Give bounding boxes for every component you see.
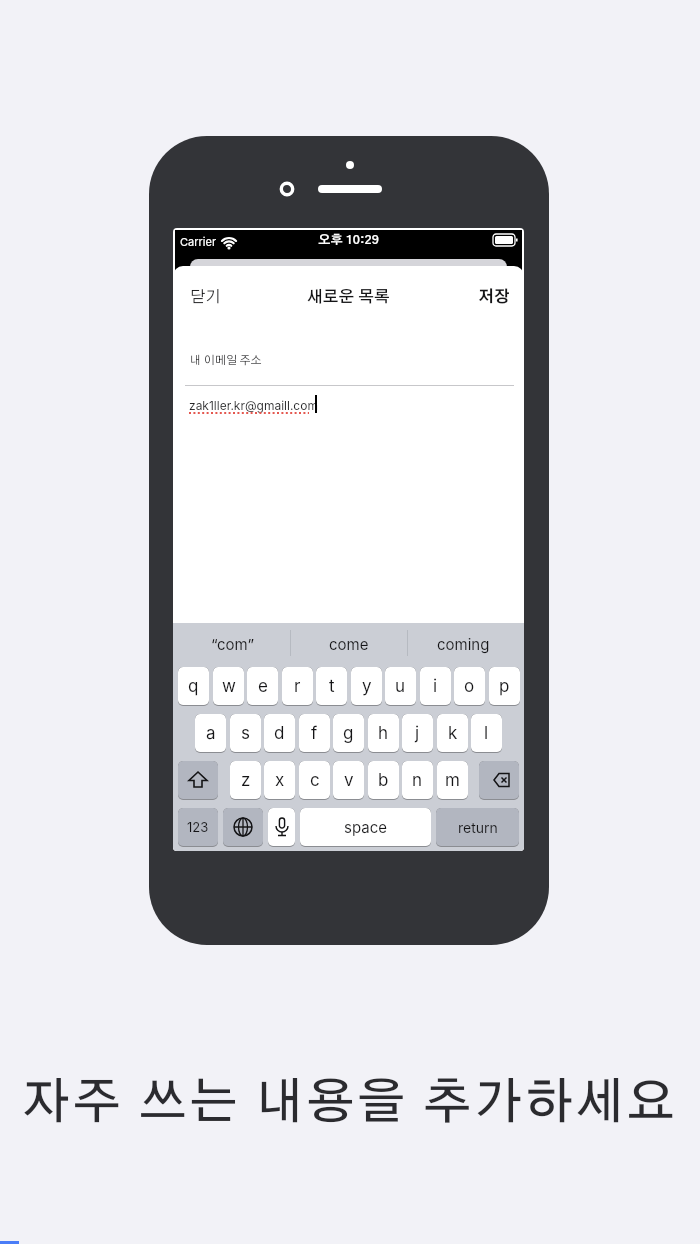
- staticText: b: [378, 770, 389, 791]
- staticText: 오후 10:29: [318, 234, 379, 247]
- staticText: Carrier: [180, 235, 217, 248]
- staticText: q: [188, 676, 199, 697]
- staticText: c: [310, 770, 320, 791]
- button[interactable]: v: [333, 761, 364, 800]
- staticText: 자주 쓰는 내용을 추가하세요: [22, 1079, 678, 1128]
- button[interactable]: [223, 808, 263, 847]
- button[interactable]: [479, 761, 519, 800]
- staticText: “com”: [211, 635, 255, 653]
- staticText: h: [378, 723, 389, 744]
- staticText: 새로운 목록: [307, 289, 390, 305]
- staticText: y: [362, 676, 372, 697]
- button[interactable]: j: [402, 714, 433, 753]
- staticText: 저장: [478, 289, 510, 305]
- staticText: g: [343, 723, 354, 744]
- staticText: x: [275, 770, 285, 791]
- button[interactable]: space: [300, 808, 431, 847]
- button[interactable]: i: [420, 667, 451, 706]
- staticText: k: [448, 723, 458, 744]
- staticText: n: [412, 770, 423, 791]
- button[interactable]: p: [489, 667, 520, 706]
- button[interactable]: 저장: [478, 289, 510, 305]
- staticText: a: [206, 723, 216, 744]
- button[interactable]: m: [437, 761, 468, 800]
- button[interactable]: d: [264, 714, 295, 753]
- button[interactable]: n: [402, 761, 433, 800]
- button[interactable]: r: [282, 667, 313, 706]
- staticText: m: [445, 770, 460, 791]
- staticText: space: [344, 818, 387, 836]
- staticText: l: [484, 723, 489, 744]
- button[interactable]: b: [368, 761, 399, 800]
- button[interactable]: g: [333, 714, 364, 753]
- button[interactable]: l: [471, 714, 502, 753]
- staticText: f: [311, 723, 318, 744]
- staticText: r: [294, 676, 301, 697]
- button[interactable]: 123: [178, 808, 218, 847]
- button[interactable]: 닫기: [190, 289, 221, 305]
- staticText: v: [344, 770, 354, 791]
- button[interactable]: t: [316, 667, 347, 706]
- staticText: d: [274, 723, 285, 744]
- button[interactable]: h: [368, 714, 399, 753]
- staticText: zak1ller.kr@gmaill.com: [189, 398, 318, 413]
- staticText: 닫기: [190, 289, 221, 305]
- button[interactable]: e: [247, 667, 278, 706]
- button[interactable]: s: [230, 714, 261, 753]
- button[interactable]: w: [213, 667, 244, 706]
- button[interactable]: z: [230, 761, 261, 800]
- button[interactable]: x: [264, 761, 295, 800]
- button[interactable]: return: [436, 808, 519, 847]
- button[interactable]: c: [299, 761, 330, 800]
- button[interactable]: [268, 808, 295, 847]
- button[interactable]: [178, 761, 218, 800]
- button[interactable]: q: [178, 667, 209, 706]
- staticText: w: [222, 676, 236, 697]
- button[interactable]: o: [454, 667, 485, 706]
- button[interactable]: come: [303, 631, 395, 656]
- button[interactable]: u: [385, 667, 416, 706]
- staticText: s: [241, 723, 250, 744]
- staticText: return: [458, 819, 498, 836]
- button[interactable]: y: [351, 667, 382, 706]
- staticText: z: [241, 770, 251, 791]
- button[interactable]: coming: [417, 631, 509, 656]
- staticText: e: [258, 676, 268, 697]
- button[interactable]: “com”: [187, 631, 279, 656]
- staticText: j: [415, 723, 420, 744]
- button[interactable]: a: [195, 714, 226, 753]
- staticText: come: [329, 635, 369, 653]
- staticText: 123: [187, 819, 209, 835]
- button[interactable]: k: [437, 714, 468, 753]
- button[interactable]: f: [299, 714, 330, 753]
- staticText: o: [464, 676, 475, 697]
- staticText: u: [395, 676, 406, 697]
- staticText: p: [499, 676, 510, 697]
- staticText: i: [433, 676, 438, 697]
- staticText: 내 이메일 주소: [190, 355, 262, 367]
- staticText: coming: [437, 635, 490, 653]
- staticText: t: [329, 676, 335, 697]
